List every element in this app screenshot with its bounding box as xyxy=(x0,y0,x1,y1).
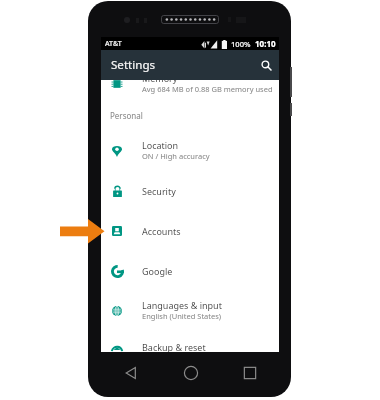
button[interactable]: Location xyxy=(101,131,279,171)
staticText: Avg 684 MB of 0.88 GB memory used xyxy=(142,84,273,94)
staticText: Languages & input xyxy=(142,299,222,311)
button[interactable]: Google xyxy=(101,251,279,291)
button[interactable]: Backup & reset xyxy=(101,327,279,352)
staticText: ON / High accuracy xyxy=(142,151,210,161)
staticText: Accounts xyxy=(142,225,181,237)
button[interactable]: Accounts xyxy=(101,211,279,251)
staticText: English (United States) xyxy=(142,311,222,321)
button[interactable]: Security xyxy=(101,171,279,211)
button[interactable]: Home xyxy=(161,352,220,393)
staticText: Security xyxy=(142,185,176,197)
button[interactable]: Back xyxy=(101,352,161,393)
staticText: Google xyxy=(142,265,173,277)
staticText: 10:10 xyxy=(255,38,276,49)
staticText: 100% xyxy=(231,39,251,49)
button[interactable]: Memory xyxy=(101,64,279,104)
staticText: Location xyxy=(142,139,179,151)
button[interactable]: Languages & input xyxy=(101,291,279,331)
staticText: Settings xyxy=(111,57,156,73)
button[interactable]: Recent apps xyxy=(220,352,279,393)
staticText: AT&T xyxy=(105,39,122,49)
staticText: Backup & reset xyxy=(142,341,206,352)
staticText: Personal xyxy=(110,110,143,121)
button[interactable]: Search xyxy=(254,53,278,77)
staticText: Memory xyxy=(142,72,178,84)
